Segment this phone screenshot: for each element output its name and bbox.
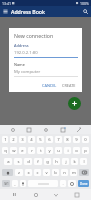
staticText: l [83,159,85,165]
staticText: Done [80,182,88,186]
staticText: p [84,148,87,154]
button[interactable]: r [28,147,35,154]
button[interactable]: Shift [2,169,13,176]
button[interactable]: v [43,169,50,176]
staticText: 6 [48,137,51,143]
button[interactable]: y [46,147,53,154]
button[interactable]: o [73,147,80,154]
button[interactable]: a [4,158,12,165]
button[interactable]: m [70,169,77,176]
button[interactable]: 4 [28,136,35,143]
button[interactable]: Done [78,180,89,187]
button[interactable]: Keyboard tool 5 [74,125,83,134]
button[interactable]: Symbols [2,180,10,187]
staticText: c [36,170,39,176]
button[interactable]: Keyboard tool 3 [41,125,50,134]
button[interactable]: i [64,147,71,154]
button[interactable]: Recents [9,189,20,200]
staticText: , [14,181,16,187]
staticText: My computer [14,69,41,75]
staticText: 8 [66,137,69,143]
button[interactable]: f [34,158,42,165]
button[interactable]: Back [50,189,61,200]
staticText: f [37,159,39,165]
button[interactable]: Backspace [79,169,89,176]
button[interactable]: s [14,158,22,165]
button[interactable]: 2 [10,136,17,143]
button[interactable]: 9 [73,136,80,143]
button[interactable]: CREATE [60,81,78,90]
button[interactable]: p [82,147,89,154]
staticText: 0 [84,137,87,143]
staticText: g [46,159,49,165]
button[interactable]: Search [80,6,91,17]
button[interactable]: q [2,147,8,154]
button[interactable]: Home [30,189,41,200]
button[interactable]: 5 [37,136,44,143]
staticText: !#1 [4,182,9,186]
button[interactable]: Voice input [20,180,26,187]
staticText: z [18,170,20,176]
button[interactable]: CANCEL [40,81,59,90]
button[interactable]: k [71,158,78,165]
button[interactable]: . [60,180,66,187]
button[interactable]: b [52,169,59,176]
button[interactable]: t [37,147,44,154]
staticText: v [45,170,48,176]
staticText: w [12,148,16,154]
button[interactable]: j [62,158,69,165]
button[interactable]: , [12,180,18,187]
button[interactable]: h [53,158,60,165]
button[interactable]: 6 [46,136,53,143]
staticText: 2 [12,137,15,143]
staticText: t [40,148,42,154]
button[interactable]: n [61,169,68,176]
button[interactable]: d [24,158,32,165]
button[interactable]: 3 [19,136,26,143]
button[interactable]: Add contact [68,97,81,110]
staticText: x [27,170,30,176]
button[interactable]: l [80,158,87,165]
button[interactable]: Keyboard tool 2 [24,125,33,134]
button[interactable]: Keyboard tool 4 [58,125,67,134]
staticText: n [63,170,66,176]
staticText: d [27,159,30,165]
staticText: 9 [75,137,78,143]
staticText: i [67,148,69,154]
button[interactable]: 7 [55,136,62,143]
staticText: 7 [57,137,60,143]
button[interactable]: g [44,158,51,165]
button[interactable]: 1 [2,136,8,143]
staticText: m [72,170,76,176]
button[interactable]: w [10,147,17,154]
button[interactable]: z [15,169,23,176]
button[interactable]: Keyboard tool 1 [8,125,17,134]
button[interactable]: u [55,147,62,154]
staticText: b [54,170,57,176]
staticText: Name [14,62,25,67]
button[interactable]: 0 [82,136,89,143]
staticText: 192.0.2.1:80 [14,50,38,56]
staticText: . [62,181,64,187]
button[interactable]: 8 [64,136,71,143]
staticText: 3 [21,137,24,143]
staticText: Address [14,43,29,48]
staticText: o [75,148,78,154]
staticText: 4 [30,137,33,143]
staticText: e [21,148,24,154]
button[interactable]: x [25,169,32,176]
button[interactable]: Hide keyboard [71,189,82,200]
button[interactable]: Open navigation menu [0,6,11,17]
staticText: Address Book [11,8,45,15]
staticText: y [48,148,51,154]
staticText: j [65,159,67,165]
button[interactable]: Emoji [68,180,76,187]
staticText: r [31,148,33,154]
staticText: CREATE [62,83,76,88]
staticText: s [17,159,20,165]
staticText: 5 [39,137,42,143]
button[interactable]: c [34,169,41,176]
button[interactable]: Space [28,180,58,187]
button[interactable]: e [19,147,26,154]
staticText: 1 [4,137,7,143]
